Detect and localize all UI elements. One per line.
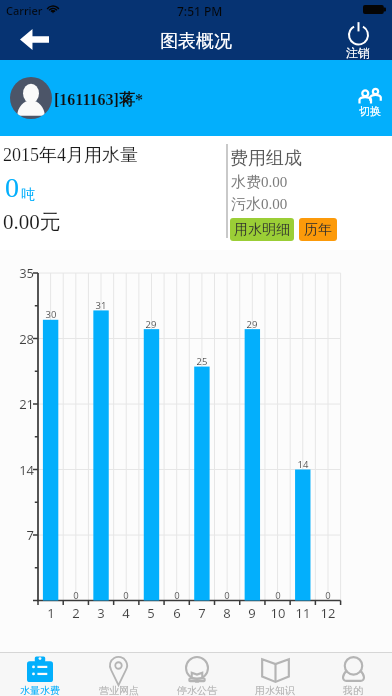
staticText: 7 xyxy=(13,526,34,544)
staticText: 35 xyxy=(13,264,34,282)
staticText: 7 xyxy=(192,604,212,622)
staticText: 0 xyxy=(268,589,288,602)
staticText: 29 xyxy=(141,318,161,331)
button[interactable]: 用水明细 xyxy=(230,218,294,241)
staticText: 30 xyxy=(41,308,61,321)
button[interactable]: Back xyxy=(20,20,60,60)
staticText: 2 xyxy=(66,604,86,622)
staticText: 0 xyxy=(167,589,187,602)
staticText: 4 xyxy=(116,604,136,622)
staticText: 21 xyxy=(13,395,34,413)
staticText: 历年 xyxy=(304,221,332,239)
staticText: 5 xyxy=(141,604,161,622)
staticText: 11 xyxy=(293,604,313,622)
staticText: 14 xyxy=(13,461,34,479)
button[interactable]: 切换 xyxy=(357,88,382,118)
staticText: 25 xyxy=(192,355,212,368)
button[interactable]: 用水知识 xyxy=(236,653,314,696)
staticText: 6 xyxy=(167,604,187,622)
staticText: 1 xyxy=(41,604,61,622)
staticText: 我的 xyxy=(343,684,363,696)
button[interactable]: 注销 xyxy=(346,23,370,60)
staticText: 0 xyxy=(66,589,86,602)
staticText: 0.00元 xyxy=(3,209,61,235)
staticText: 28 xyxy=(13,330,34,348)
staticText: 吨 xyxy=(21,186,35,204)
staticText: 31 xyxy=(91,299,111,312)
staticText: [1611163]蒋* xyxy=(54,90,143,110)
staticText: 污水0.00 xyxy=(231,195,288,214)
button[interactable]: 我的 xyxy=(314,653,392,696)
staticText: 用水知识 xyxy=(255,684,295,696)
staticText: 12 xyxy=(318,604,338,622)
staticText: 14 xyxy=(293,458,313,471)
staticText: 切换 xyxy=(359,104,381,118)
staticText: 费用组成 xyxy=(230,147,302,170)
staticText: 注销 xyxy=(346,45,370,60)
staticText: 29 xyxy=(242,318,262,331)
staticText: 3 xyxy=(91,604,111,622)
button[interactable]: 营业网点 xyxy=(79,653,158,696)
staticText: 8 xyxy=(217,604,237,622)
button[interactable]: 水量水费 xyxy=(0,653,79,696)
staticText: 2015年4月用水量 xyxy=(3,144,138,167)
staticText: 9 xyxy=(242,604,262,622)
staticText: 停水公告 xyxy=(177,684,217,696)
staticText: 0 xyxy=(217,589,237,602)
staticText: 0 xyxy=(116,589,136,602)
button[interactable]: 历年 xyxy=(299,218,337,241)
staticText: 0 xyxy=(5,172,19,203)
button[interactable]: 停水公告 xyxy=(158,653,236,696)
staticText: 水费0.00 xyxy=(231,173,288,192)
staticText: 7:51 PM xyxy=(177,3,223,19)
staticText: 用水明细 xyxy=(234,221,290,239)
staticText: 水量水费 xyxy=(20,684,60,696)
staticText: 图表概况 xyxy=(160,30,232,53)
staticText: 0 xyxy=(318,589,338,602)
staticText: Carrier xyxy=(6,3,43,18)
staticText: 营业网点 xyxy=(99,684,139,696)
staticText: 10 xyxy=(268,604,288,622)
